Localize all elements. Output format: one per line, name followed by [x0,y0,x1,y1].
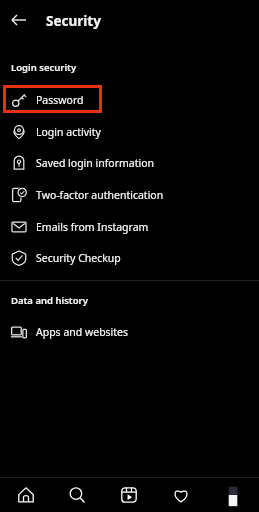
staticText: Security [46,12,101,30]
staticText: Emails from Instagram [36,220,149,234]
staticText: Security Checkup [36,251,121,265]
button[interactable]: Activity [155,478,207,512]
button[interactable]: Search [51,478,103,512]
staticText: Login activity [36,125,101,139]
staticText: Login security [11,61,77,74]
staticText: Password [36,93,84,107]
button[interactable]: Two-factor authentication [0,183,259,207]
button[interactable]: Login activity [0,120,259,144]
button[interactable]: Apps and websites [0,320,259,344]
button[interactable]: Password [0,88,259,112]
button[interactable]: Emails from Instagram [0,215,259,239]
button[interactable]: Back [7,8,31,32]
staticText: Saved login information [36,156,155,170]
staticText: Data and history [11,294,88,307]
button[interactable]: Saved login information [0,151,259,175]
staticText: Two-factor authentication [36,188,164,202]
button[interactable]: Security Checkup [0,246,259,270]
staticText: Apps and websites [36,325,129,339]
button[interactable]: Reels [103,478,155,512]
button[interactable]: Profile [207,478,259,512]
button[interactable]: Home [0,478,51,512]
